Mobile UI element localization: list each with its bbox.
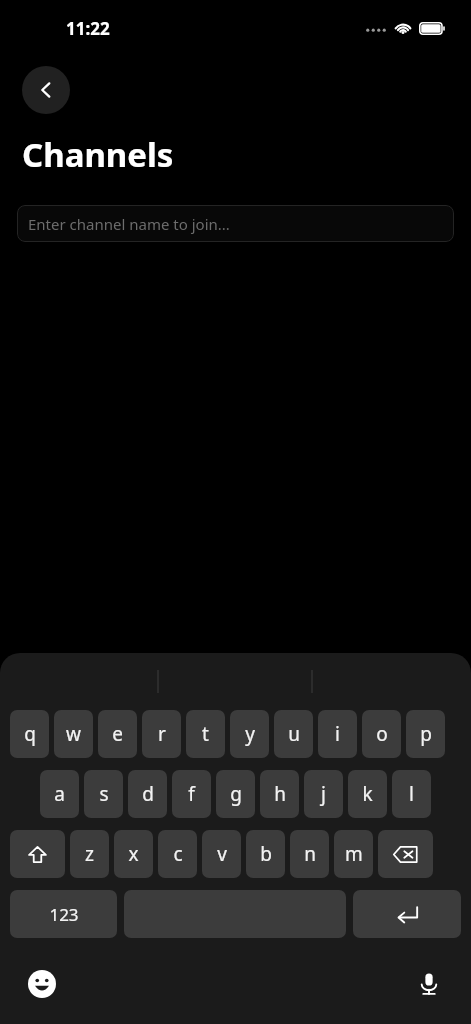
staticText: p xyxy=(420,721,432,747)
button[interactable]: c xyxy=(158,830,197,878)
button[interactable]: m xyxy=(334,830,373,878)
staticText: b xyxy=(260,841,272,867)
staticText: f xyxy=(188,781,195,807)
button[interactable]: Backspace xyxy=(378,830,433,878)
button[interactable]: Enter xyxy=(353,890,461,938)
button[interactable]: f xyxy=(172,770,211,818)
button[interactable]: e xyxy=(98,710,137,758)
staticText: h xyxy=(274,781,286,807)
button[interactable]: q xyxy=(10,710,49,758)
staticText: n xyxy=(304,841,316,867)
button[interactable]: d xyxy=(128,770,167,818)
staticText: y xyxy=(245,721,255,747)
staticText: s xyxy=(99,781,109,807)
staticText: a xyxy=(54,781,65,807)
button[interactable]: b xyxy=(246,830,285,878)
button[interactable]: v xyxy=(202,830,241,878)
button[interactable]: t xyxy=(186,710,225,758)
staticText: k xyxy=(362,781,373,807)
staticText: r xyxy=(158,721,166,747)
staticText: d xyxy=(142,781,154,807)
staticText: q xyxy=(24,721,36,747)
staticText: j xyxy=(321,781,326,807)
staticText: m xyxy=(345,841,363,867)
staticText: l xyxy=(409,781,414,807)
button[interactable]: j xyxy=(304,770,343,818)
staticText: i xyxy=(335,721,340,747)
button[interactable]: k xyxy=(348,770,387,818)
button[interactable]: l xyxy=(392,770,431,818)
staticText: x xyxy=(128,841,139,867)
button[interactable]: h xyxy=(260,770,299,818)
button[interactable]: i xyxy=(318,710,357,758)
button[interactable]: x xyxy=(114,830,153,878)
button[interactable]: Enter channel name to join... xyxy=(17,205,454,242)
button[interactable]: n xyxy=(290,830,329,878)
button[interactable]: s xyxy=(84,770,123,818)
staticText: t xyxy=(202,721,209,747)
staticText: Channels xyxy=(22,132,174,177)
button[interactable]: Emoji xyxy=(22,964,62,1004)
staticText: 123 xyxy=(49,903,79,926)
button[interactable]: a xyxy=(40,770,79,818)
button[interactable]: Back xyxy=(22,66,70,114)
button[interactable]: p xyxy=(406,710,445,758)
staticText: u xyxy=(288,721,300,747)
staticText: Enter channel name to join... xyxy=(28,214,230,234)
staticText: v xyxy=(217,841,227,867)
button[interactable]: z xyxy=(70,830,109,878)
staticText: e xyxy=(112,721,123,747)
staticText: z xyxy=(85,841,94,867)
button[interactable]: u xyxy=(274,710,313,758)
staticText: 11:22 xyxy=(66,17,110,40)
button[interactable]: g xyxy=(216,770,255,818)
button[interactable]: 123 xyxy=(10,890,117,938)
button[interactable]: Shift xyxy=(10,830,65,878)
button[interactable]: Voice input xyxy=(409,964,449,1004)
staticText: g xyxy=(230,781,242,807)
button[interactable]: w xyxy=(54,710,93,758)
staticText: w xyxy=(66,721,81,747)
button[interactable]: o xyxy=(362,710,401,758)
staticText: c xyxy=(173,841,183,867)
staticText: o xyxy=(376,721,388,747)
button[interactable]: r xyxy=(142,710,181,758)
button[interactable]: y xyxy=(230,710,269,758)
